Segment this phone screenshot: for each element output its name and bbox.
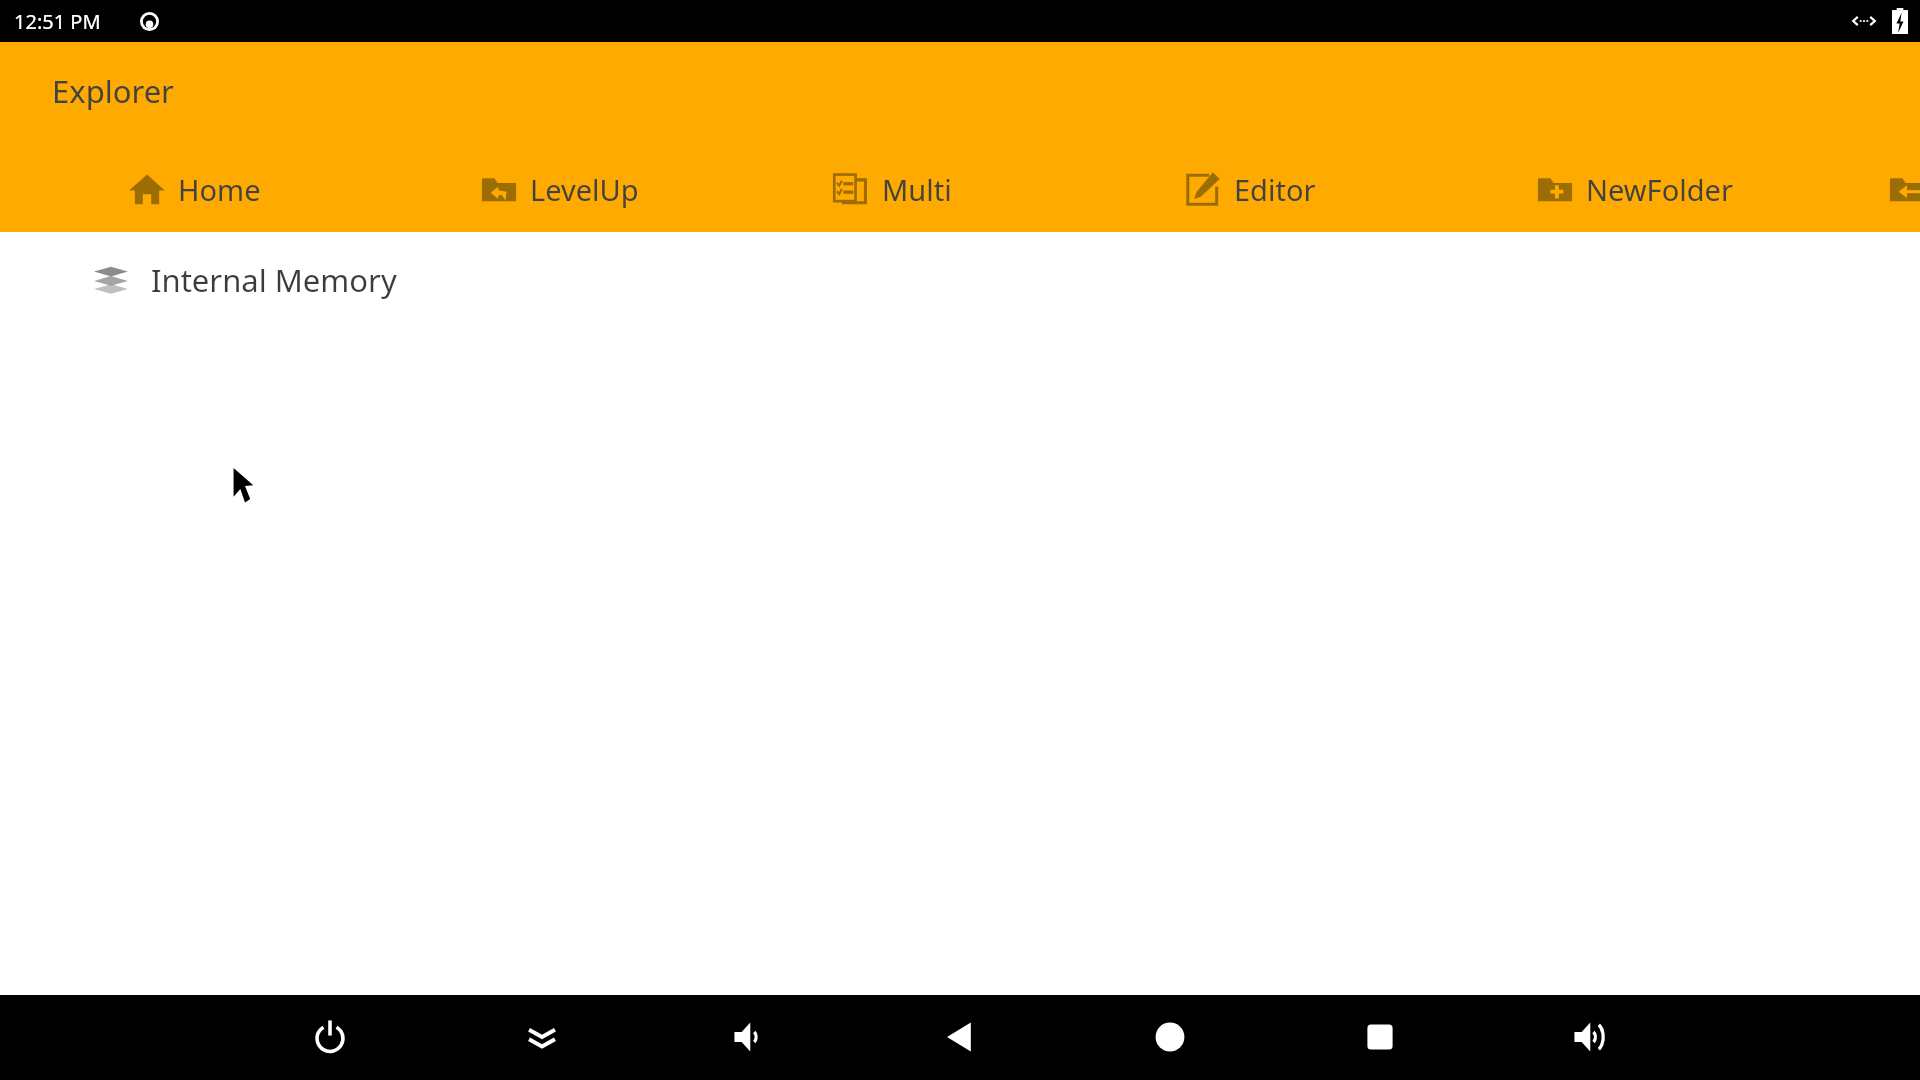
button[interactable]: Power — [294, 1001, 366, 1073]
button[interactable]: Collapse — [506, 1001, 578, 1073]
button[interactable]: Editor — [1184, 161, 1316, 217]
button[interactable]: Multi — [832, 161, 952, 217]
button[interactable]: NewFolder — [1536, 161, 1733, 217]
button[interactable]: Back — [924, 1001, 996, 1073]
staticText: NewFolder — [1586, 170, 1733, 209]
staticText: Internal Memory — [151, 259, 397, 301]
button[interactable]: LevelUp — [480, 161, 639, 217]
button[interactable]: Volume up — [1555, 1001, 1627, 1073]
button[interactable]: Go up — [1888, 161, 1920, 217]
button[interactable]: Internal Memory — [0, 232, 1920, 328]
button[interactable]: Home — [128, 161, 261, 217]
button[interactable]: Volume down — [715, 1001, 787, 1073]
staticText: Multi — [882, 170, 952, 209]
staticText: 12:51 PM — [14, 8, 101, 35]
staticText: LevelUp — [530, 170, 639, 209]
button[interactable]: Home — [1134, 1001, 1206, 1073]
staticText: Explorer — [52, 70, 174, 112]
staticText: Home — [178, 170, 261, 209]
button[interactable]: Recents — [1344, 1001, 1416, 1073]
staticText: Editor — [1234, 170, 1316, 209]
